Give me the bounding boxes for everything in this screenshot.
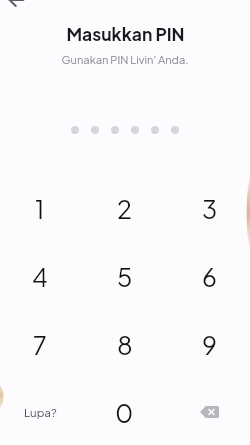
staticText: Gunakan PIN Livin' Anda. [61,52,189,66]
button[interactable]: Backspace [167,378,250,445]
staticText: 3 [202,193,218,224]
button[interactable]: Lupa? [0,378,82,445]
staticText: 7 [33,329,47,360]
button[interactable]: 3 [167,174,250,242]
other: Backspace [200,406,219,418]
staticText: 1 [35,193,45,224]
staticText: Lupa? [24,405,57,419]
button[interactable]: 1 [0,174,82,242]
staticText: 6 [202,261,217,292]
button[interactable]: Back [4,0,26,11]
staticText: 5 [117,261,133,292]
button[interactable]: 7 [0,310,82,378]
staticText: 4 [32,261,48,292]
staticText: 9 [202,329,217,360]
staticText: 8 [117,329,133,360]
button[interactable]: 9 [167,310,250,378]
button[interactable]: 2 [82,174,167,242]
button[interactable]: 5 [82,242,167,310]
button[interactable]: 8 [82,310,167,378]
button[interactable]: 4 [0,242,82,310]
staticText: 0 [115,397,134,428]
button[interactable]: 0 [82,378,167,445]
button[interactable]: 6 [167,242,250,310]
staticText: Masukkan PIN [66,23,185,45]
staticText: 2 [117,193,133,224]
